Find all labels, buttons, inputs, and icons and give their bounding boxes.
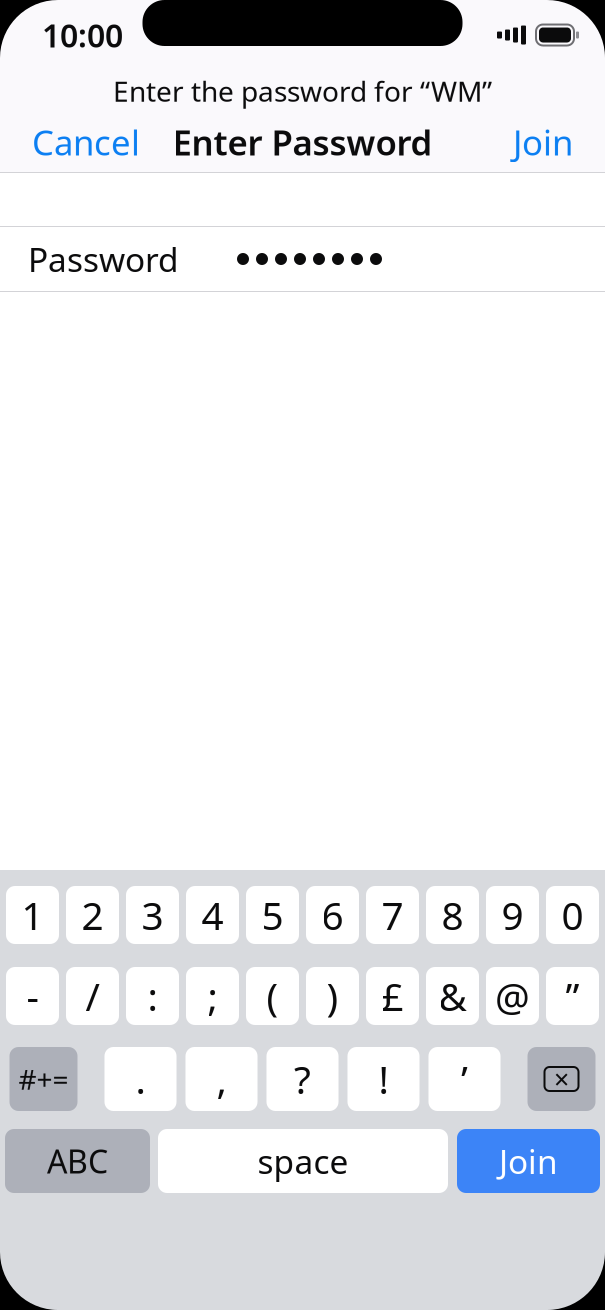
button[interactable]: 2: [66, 886, 119, 944]
staticText: 2: [81, 889, 103, 941]
staticText: Enter the password for “WM”: [113, 72, 492, 110]
button[interactable]: -: [6, 967, 59, 1025]
staticText: (: [266, 970, 278, 1022]
button[interactable]: ): [306, 967, 359, 1025]
staticText: ”: [565, 970, 579, 1022]
button[interactable]: 8: [426, 886, 479, 944]
staticText: 5: [261, 889, 283, 941]
staticText: 7: [381, 889, 403, 941]
staticText: :: [147, 970, 157, 1022]
button[interactable]: ”: [546, 967, 599, 1025]
button[interactable]: 1: [6, 886, 59, 944]
button[interactable]: :: [126, 967, 179, 1025]
staticText: ;: [207, 970, 217, 1022]
staticText: 6: [321, 889, 343, 941]
staticText: @: [495, 970, 530, 1022]
button[interactable]: (: [246, 967, 299, 1025]
button[interactable]: ;: [186, 967, 239, 1025]
button[interactable]: @: [486, 967, 539, 1025]
button[interactable]: !: [347, 1047, 419, 1111]
staticText: ×: [554, 1061, 569, 1097]
staticText: !: [378, 1053, 388, 1105]
button[interactable]: /: [66, 967, 119, 1025]
button[interactable]: 5: [246, 886, 299, 944]
button[interactable]: Join: [457, 1129, 600, 1193]
button[interactable]: Cancel: [18, 107, 154, 177]
staticText: Join: [499, 1139, 558, 1183]
button[interactable]: 3: [126, 886, 179, 944]
button[interactable]: Delete: [527, 1047, 595, 1111]
staticText: .: [135, 1053, 145, 1105]
button[interactable]: 4: [186, 886, 239, 944]
button[interactable]: 7: [366, 886, 419, 944]
staticText: £: [381, 970, 403, 1022]
staticText: 8: [441, 889, 463, 941]
staticText: ,: [216, 1053, 226, 1105]
button[interactable]: ,: [185, 1047, 257, 1111]
staticText: 3: [141, 889, 163, 941]
button[interactable]: 0: [546, 886, 599, 944]
button[interactable]: &: [426, 967, 479, 1025]
button[interactable]: ’: [428, 1047, 500, 1111]
staticText: ’: [461, 1053, 468, 1105]
staticText: &: [438, 970, 466, 1022]
staticText: /: [85, 970, 99, 1022]
staticText: 9: [501, 889, 523, 941]
staticText: 10:00: [42, 14, 123, 56]
staticText: ?: [294, 1053, 311, 1105]
button[interactable]: 6: [306, 886, 359, 944]
button[interactable]: Password: [0, 227, 605, 291]
button[interactable]: ABC: [5, 1129, 150, 1193]
staticText: 1: [21, 889, 43, 941]
staticText: Join: [513, 119, 573, 165]
staticText: 0: [561, 889, 583, 941]
staticText: ABC: [47, 1140, 108, 1182]
staticText: ): [326, 970, 338, 1022]
staticText: 4: [201, 889, 223, 941]
staticText: #+=: [18, 1060, 68, 1098]
button[interactable]: ?: [266, 1047, 338, 1111]
button[interactable]: #+=: [9, 1047, 77, 1111]
button[interactable]: £: [366, 967, 419, 1025]
button[interactable]: 9: [486, 886, 539, 944]
staticText: space: [257, 1139, 348, 1183]
button[interactable]: .: [104, 1047, 176, 1111]
staticText: -: [26, 970, 38, 1022]
staticText: Password: [28, 237, 179, 281]
button[interactable]: space: [158, 1129, 448, 1193]
staticText: Cancel: [32, 119, 140, 165]
staticText: Enter Password: [172, 119, 432, 165]
button[interactable]: Join: [499, 107, 587, 177]
